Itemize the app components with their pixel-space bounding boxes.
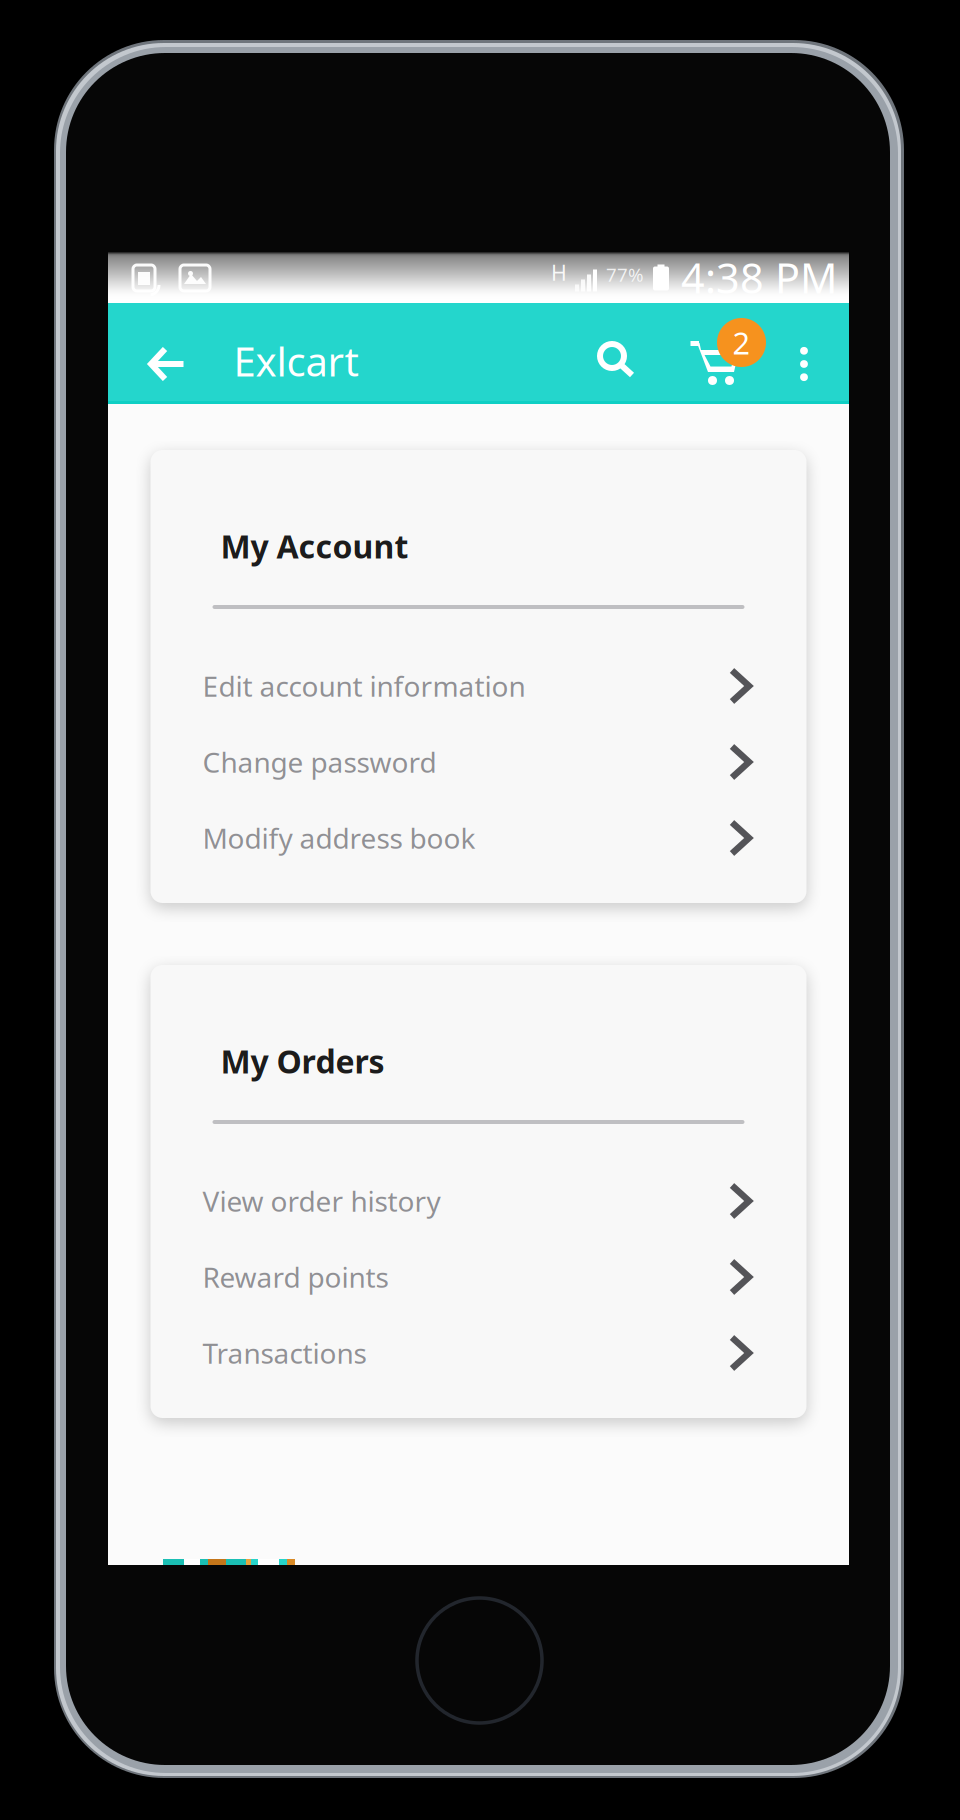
staticText: My Orders: [220, 1040, 384, 1082]
staticText: H: [551, 258, 567, 287]
staticText: Exlcart: [233, 334, 358, 387]
button[interactable]: Change password: [150, 724, 806, 800]
staticText: My Account: [220, 525, 408, 567]
button[interactable]: Reward points: [150, 1239, 806, 1315]
staticText: Edit account information: [202, 667, 525, 705]
button[interactable]: Cart, 2 items: [678, 318, 766, 402]
button[interactable]: More options: [776, 327, 832, 401]
button[interactable]: Modify address book: [150, 800, 806, 876]
staticText: Modify address book: [202, 819, 475, 857]
staticText: Change password: [202, 743, 436, 781]
button[interactable]: Back: [130, 327, 204, 401]
staticText: 77%: [606, 262, 644, 287]
staticText: Transactions: [202, 1334, 366, 1372]
button[interactable]: Transactions: [150, 1315, 806, 1391]
staticText: 2: [732, 322, 750, 363]
staticText: View order history: [202, 1182, 440, 1220]
button[interactable]: Edit account information: [150, 648, 806, 724]
staticText: Reward points: [202, 1258, 388, 1296]
button[interactable]: View order history: [150, 1163, 806, 1239]
button[interactable]: Search: [579, 323, 653, 397]
staticText: 4:38 PM: [681, 250, 837, 305]
